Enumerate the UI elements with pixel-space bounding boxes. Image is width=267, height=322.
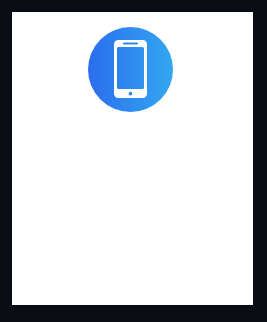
button[interactable]: Mobile device (88, 27, 173, 112)
